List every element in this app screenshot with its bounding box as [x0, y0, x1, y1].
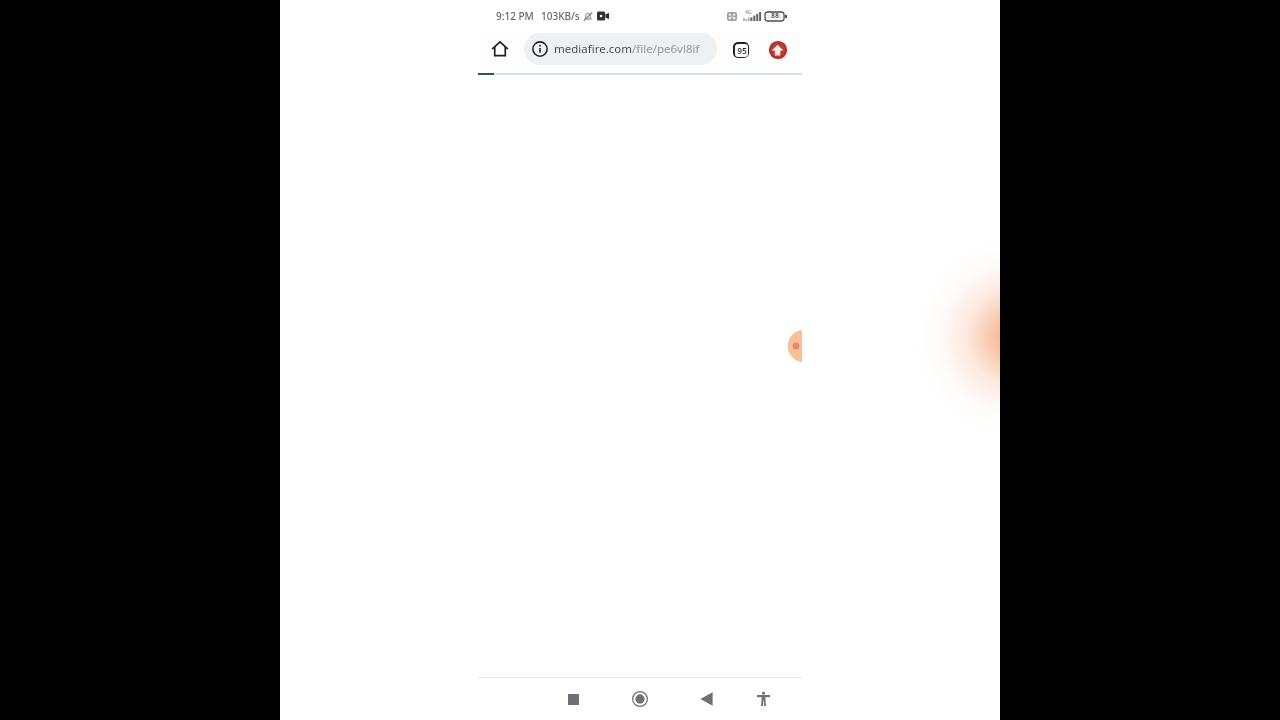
staticText: mediafire.com [554, 41, 632, 57]
button[interactable]: Update Chrome [764, 36, 792, 64]
button[interactable]: Switch tabs [727, 36, 755, 64]
button[interactable]: mediafire.com [524, 33, 717, 65]
staticText: 9:12 PM [496, 9, 534, 23]
button[interactable]: Recent apps [556, 682, 590, 716]
staticText: 103KB/s [541, 9, 580, 23]
button[interactable]: Home [486, 35, 514, 63]
button[interactable]: Back [689, 682, 723, 716]
staticText: 4G [745, 9, 752, 16]
staticText: 95 [737, 45, 747, 57]
button[interactable]: Home [623, 682, 657, 716]
staticText: /file/pe6vl8if [632, 41, 700, 57]
staticText: 88 [771, 11, 780, 21]
button[interactable]: Accessibility menu [746, 682, 780, 716]
